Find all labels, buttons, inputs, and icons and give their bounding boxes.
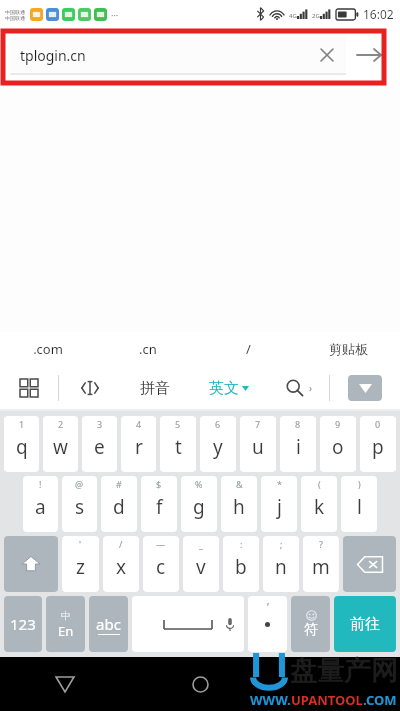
staticText: ›: [309, 381, 313, 395]
button[interactable]: $: [141, 476, 177, 532]
staticText: 拼音: [140, 379, 170, 398]
button[interactable]: .cn: [96, 332, 200, 365]
staticText: UPANTOOL: [291, 691, 363, 709]
button[interactable]: 6: [200, 416, 236, 472]
button[interactable]: ': [62, 536, 99, 592]
staticText: d: [113, 494, 125, 520]
button[interactable]: .com: [0, 332, 96, 365]
staticText: 2G: [312, 12, 320, 20]
button[interactable]: 拼音: [121, 365, 189, 411]
staticText: tplogin.cn: [20, 46, 86, 65]
staticText: 中国联通: [5, 15, 25, 21]
staticText: k: [314, 494, 325, 520]
staticText: (: [318, 478, 321, 490]
staticText: ;: [280, 538, 283, 550]
staticText: z: [76, 554, 85, 580]
staticText: g: [193, 494, 205, 520]
button[interactable]: !: [23, 476, 58, 532]
staticText: s: [75, 494, 85, 520]
button[interactable]: #: [101, 476, 137, 532]
staticText: n: [275, 554, 287, 580]
staticText: y: [213, 434, 223, 460]
button[interactable]: _: [183, 536, 219, 592]
button[interactable]: 英文: [189, 365, 269, 411]
button[interactable]: (: [301, 476, 337, 532]
button[interactable]: Hide keyboard: [330, 365, 400, 411]
button[interactable]: /: [103, 536, 139, 592]
staticText: WWW.: [250, 691, 291, 709]
staticText: ’: [267, 599, 269, 614]
button[interactable]: Search: [269, 365, 329, 411]
staticText: r: [135, 434, 143, 460]
button[interactable]: 1: [4, 416, 39, 472]
staticText: j: [277, 494, 282, 520]
button[interactable]: 前往: [334, 596, 396, 652]
staticText: 中: [61, 609, 71, 622]
staticText: —: [156, 538, 166, 550]
button[interactable]: Space: [132, 596, 244, 652]
staticText: 前往: [350, 615, 380, 634]
staticText: .cn: [139, 340, 157, 358]
button[interactable]: ): [341, 476, 377, 532]
button[interactable]: Cursor: [59, 365, 121, 411]
staticText: o: [332, 434, 344, 460]
staticText: c: [156, 554, 166, 580]
button[interactable]: abc: [89, 596, 128, 652]
button[interactable]: 7: [240, 416, 276, 472]
staticText: v: [196, 554, 206, 580]
button[interactable]: 符: [291, 596, 330, 652]
staticText: &: [236, 478, 243, 490]
staticText: En: [58, 622, 74, 640]
button[interactable]: /: [200, 332, 296, 365]
staticText: b: [235, 554, 247, 580]
button[interactable]: Punctuation: [248, 596, 287, 652]
staticText: p: [372, 434, 384, 460]
button[interactable]: 0: [360, 416, 396, 472]
staticText: 8: [295, 418, 301, 430]
staticText: 123: [10, 614, 36, 634]
button[interactable]: —: [143, 536, 179, 592]
staticText: /: [119, 538, 123, 550]
button[interactable]: 2: [43, 416, 78, 472]
button[interactable]: 8: [280, 416, 316, 472]
staticText: l: [357, 494, 362, 520]
button[interactable]: @: [62, 476, 97, 532]
button[interactable]: 剪贴板: [296, 332, 400, 365]
button[interactable]: Home: [155, 657, 245, 711]
button[interactable]: Back: [20, 657, 110, 711]
button[interactable]: Backspace: [343, 536, 396, 592]
staticText: ): [358, 478, 361, 490]
staticText: 盘量产网: [290, 654, 398, 688]
button[interactable]: Grid: [0, 365, 58, 411]
button[interactable]: 5: [160, 416, 196, 472]
staticText: @: [75, 478, 84, 490]
button[interactable]: 9: [320, 416, 356, 472]
button[interactable]: 3: [82, 416, 117, 472]
button[interactable]: *: [261, 476, 297, 532]
button[interactable]: ;: [263, 536, 299, 592]
staticText: /: [246, 340, 251, 358]
button[interactable]: tplogin.cn: [10, 35, 346, 75]
staticText: $: [156, 478, 162, 490]
staticText: #: [116, 478, 122, 490]
button[interactable]: &: [221, 476, 257, 532]
button[interactable]: 4: [121, 416, 156, 472]
staticText: x: [116, 554, 127, 580]
button[interactable]: Clear: [314, 42, 340, 68]
button[interactable]: %: [181, 476, 217, 532]
button[interactable]: :: [223, 536, 259, 592]
staticText: 英文: [209, 379, 239, 398]
staticText: 中国联通: [5, 9, 25, 15]
staticText: a: [35, 494, 46, 520]
staticText: 2: [58, 418, 64, 430]
button[interactable]: 123: [4, 596, 42, 652]
staticText: 5: [175, 418, 181, 430]
button[interactable]: 中: [46, 596, 85, 652]
button[interactable]: ?: [303, 536, 339, 592]
staticText: 16:02: [363, 6, 394, 22]
button[interactable]: Shift: [4, 536, 58, 592]
staticText: w: [53, 434, 68, 460]
staticText: h: [233, 494, 245, 520]
button[interactable]: Go: [346, 35, 392, 75]
staticText: ?: [319, 538, 323, 550]
